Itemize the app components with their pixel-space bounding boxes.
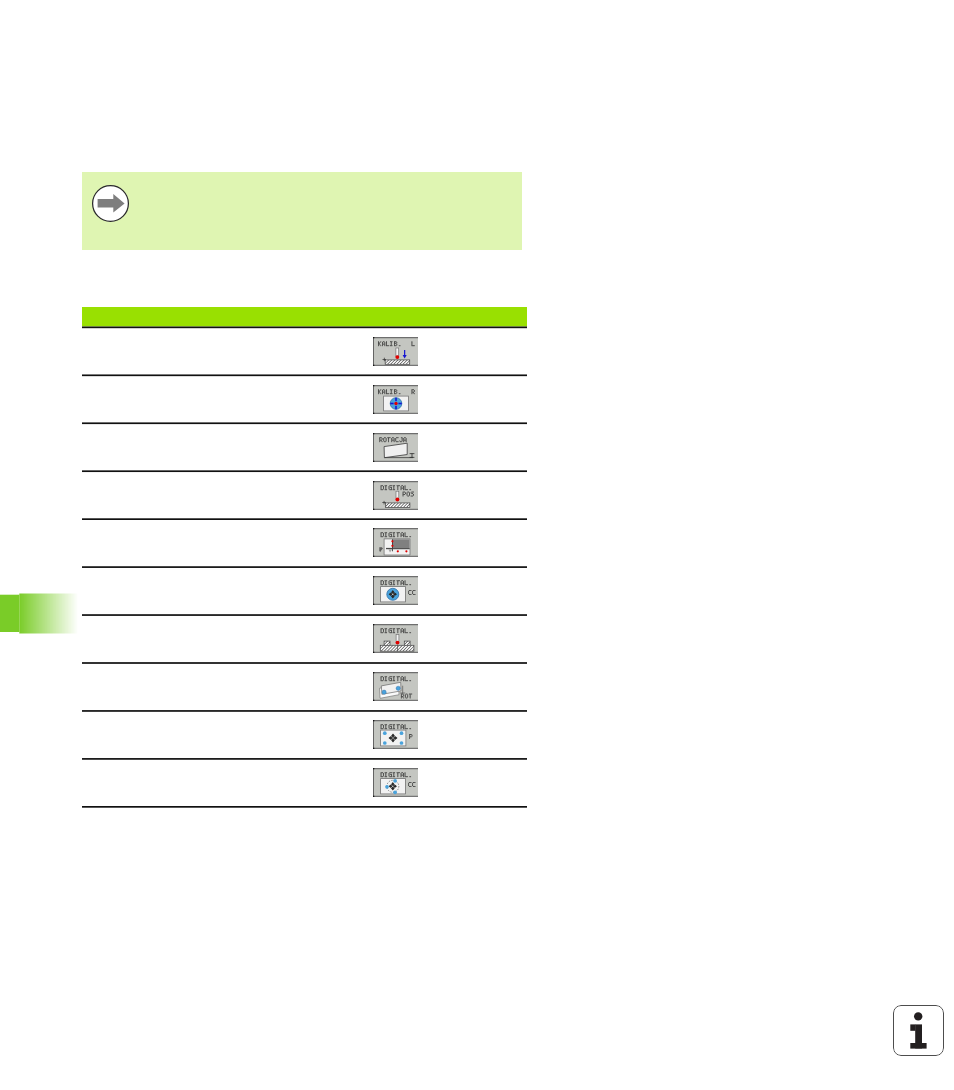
button[interactable]: Basic rotation [373,433,418,462]
button[interactable]: Probe rotation [373,672,418,701]
button[interactable]: Calibrate radius [373,385,418,414]
button[interactable]: Information [893,1005,944,1056]
button[interactable]: Calibrate length [373,337,418,366]
button[interactable]: Probe position [373,481,418,510]
button[interactable]: Probe circle centre [373,576,418,605]
button[interactable]: Probe workpiece [373,624,418,653]
button[interactable]: Probe datum point [373,720,418,749]
button[interactable]: Probe circle centre CC [373,768,418,797]
button[interactable]: Probe plane [373,528,418,557]
